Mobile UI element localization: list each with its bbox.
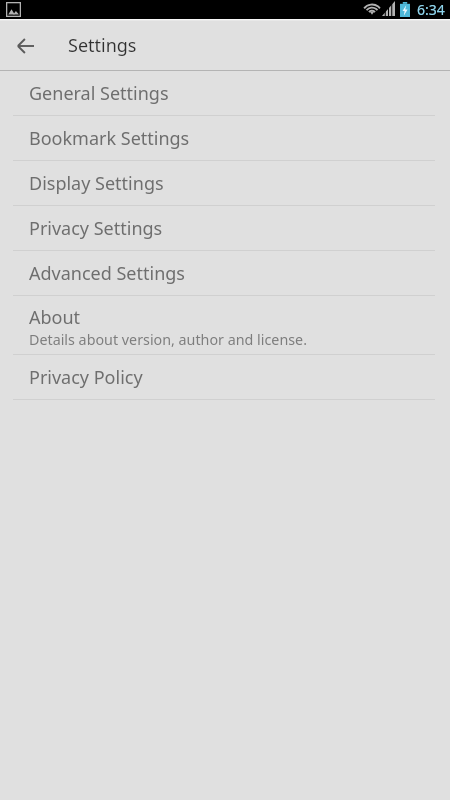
button[interactable]: Advanced Settings bbox=[0, 251, 450, 296]
button[interactable]: About bbox=[0, 296, 450, 355]
staticText: 6:34 bbox=[417, 0, 445, 19]
button[interactable]: Bookmark Settings bbox=[0, 116, 450, 161]
staticText: Display Settings bbox=[29, 171, 164, 196]
staticText: Privacy Settings bbox=[29, 216, 163, 241]
button[interactable]: General Settings bbox=[0, 71, 450, 116]
staticText: About bbox=[29, 305, 81, 330]
staticText: General Settings bbox=[29, 81, 169, 106]
staticText: Details about version, author and licens… bbox=[29, 330, 307, 349]
button[interactable]: Back bbox=[0, 21, 51, 70]
button[interactable]: Display Settings bbox=[0, 161, 450, 206]
staticText: Advanced Settings bbox=[29, 261, 185, 286]
staticText: Bookmark Settings bbox=[29, 126, 190, 151]
button[interactable]: Privacy Policy bbox=[0, 355, 450, 400]
staticText: Privacy Policy bbox=[29, 365, 143, 390]
button[interactable]: Privacy Settings bbox=[0, 206, 450, 251]
staticText: Settings bbox=[68, 33, 137, 58]
